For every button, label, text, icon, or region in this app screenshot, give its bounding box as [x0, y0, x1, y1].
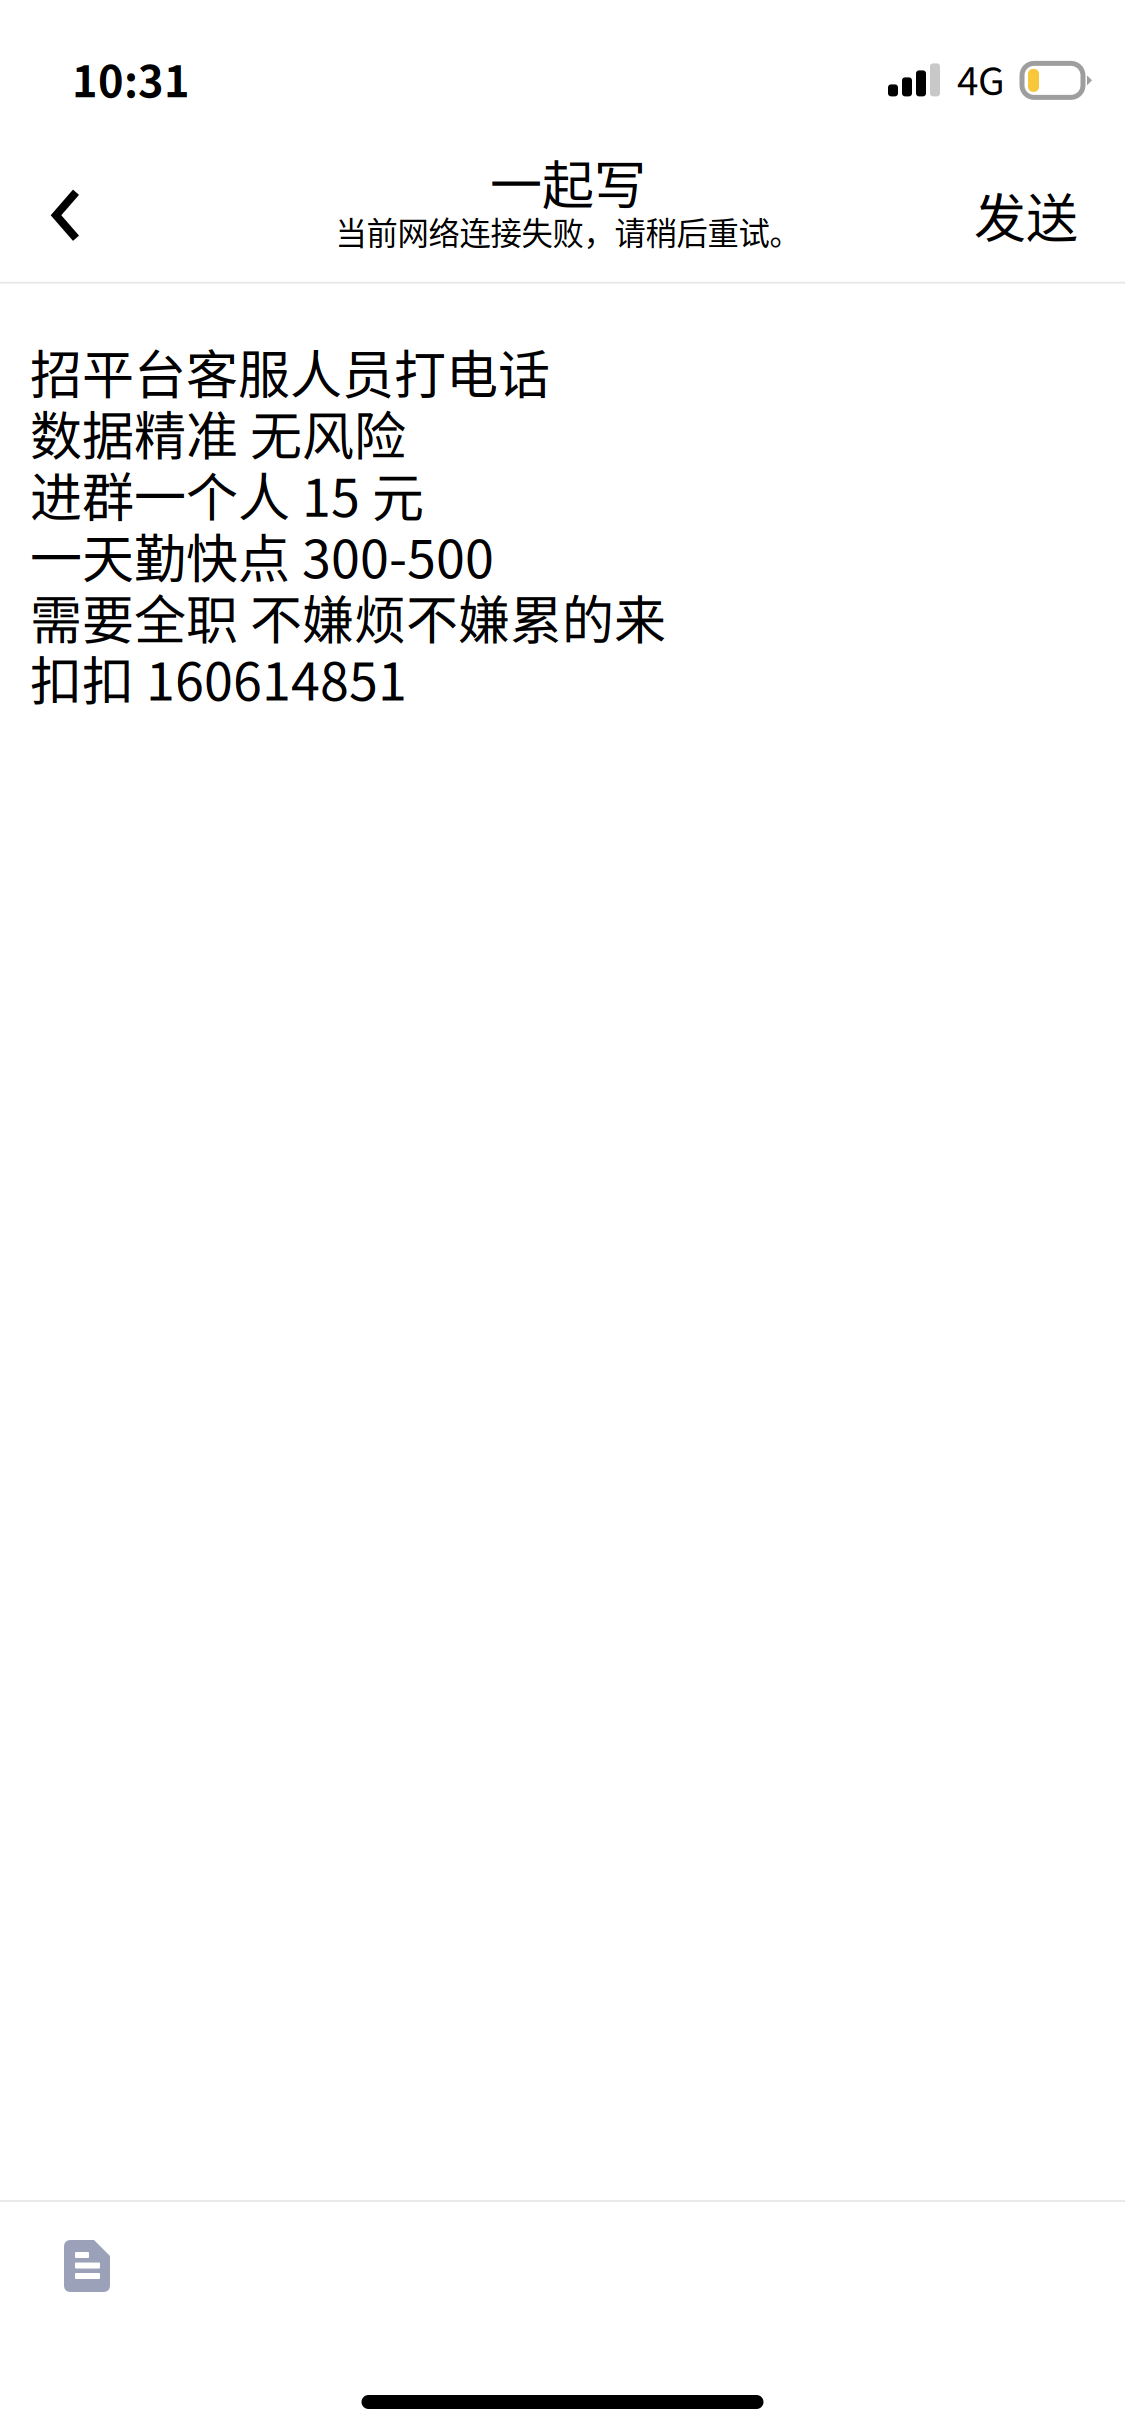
staticText: 发送 — [974, 177, 1078, 252]
button[interactable]: Attachments — [0, 2202, 144, 2330]
button[interactable]: 发送 — [951, 142, 1113, 284]
staticText: 4G — [957, 50, 1005, 106]
staticText: 一起写 — [490, 144, 646, 219]
button[interactable]: Back — [12, 142, 120, 284]
staticText: 当前网络连接失败，请稍后重试。 — [335, 208, 800, 254]
staticText: 10:31 — [72, 47, 190, 110]
button[interactable]: 招平台客服人员打电话 数据精准 无风险 进群一个人 15 元 一天勤快点 300… — [0, 284, 1125, 715]
staticText: 招平台客服人员打电话 数据精准 无风险 进群一个人 15 元 一天勤快点 300… — [30, 334, 666, 715]
